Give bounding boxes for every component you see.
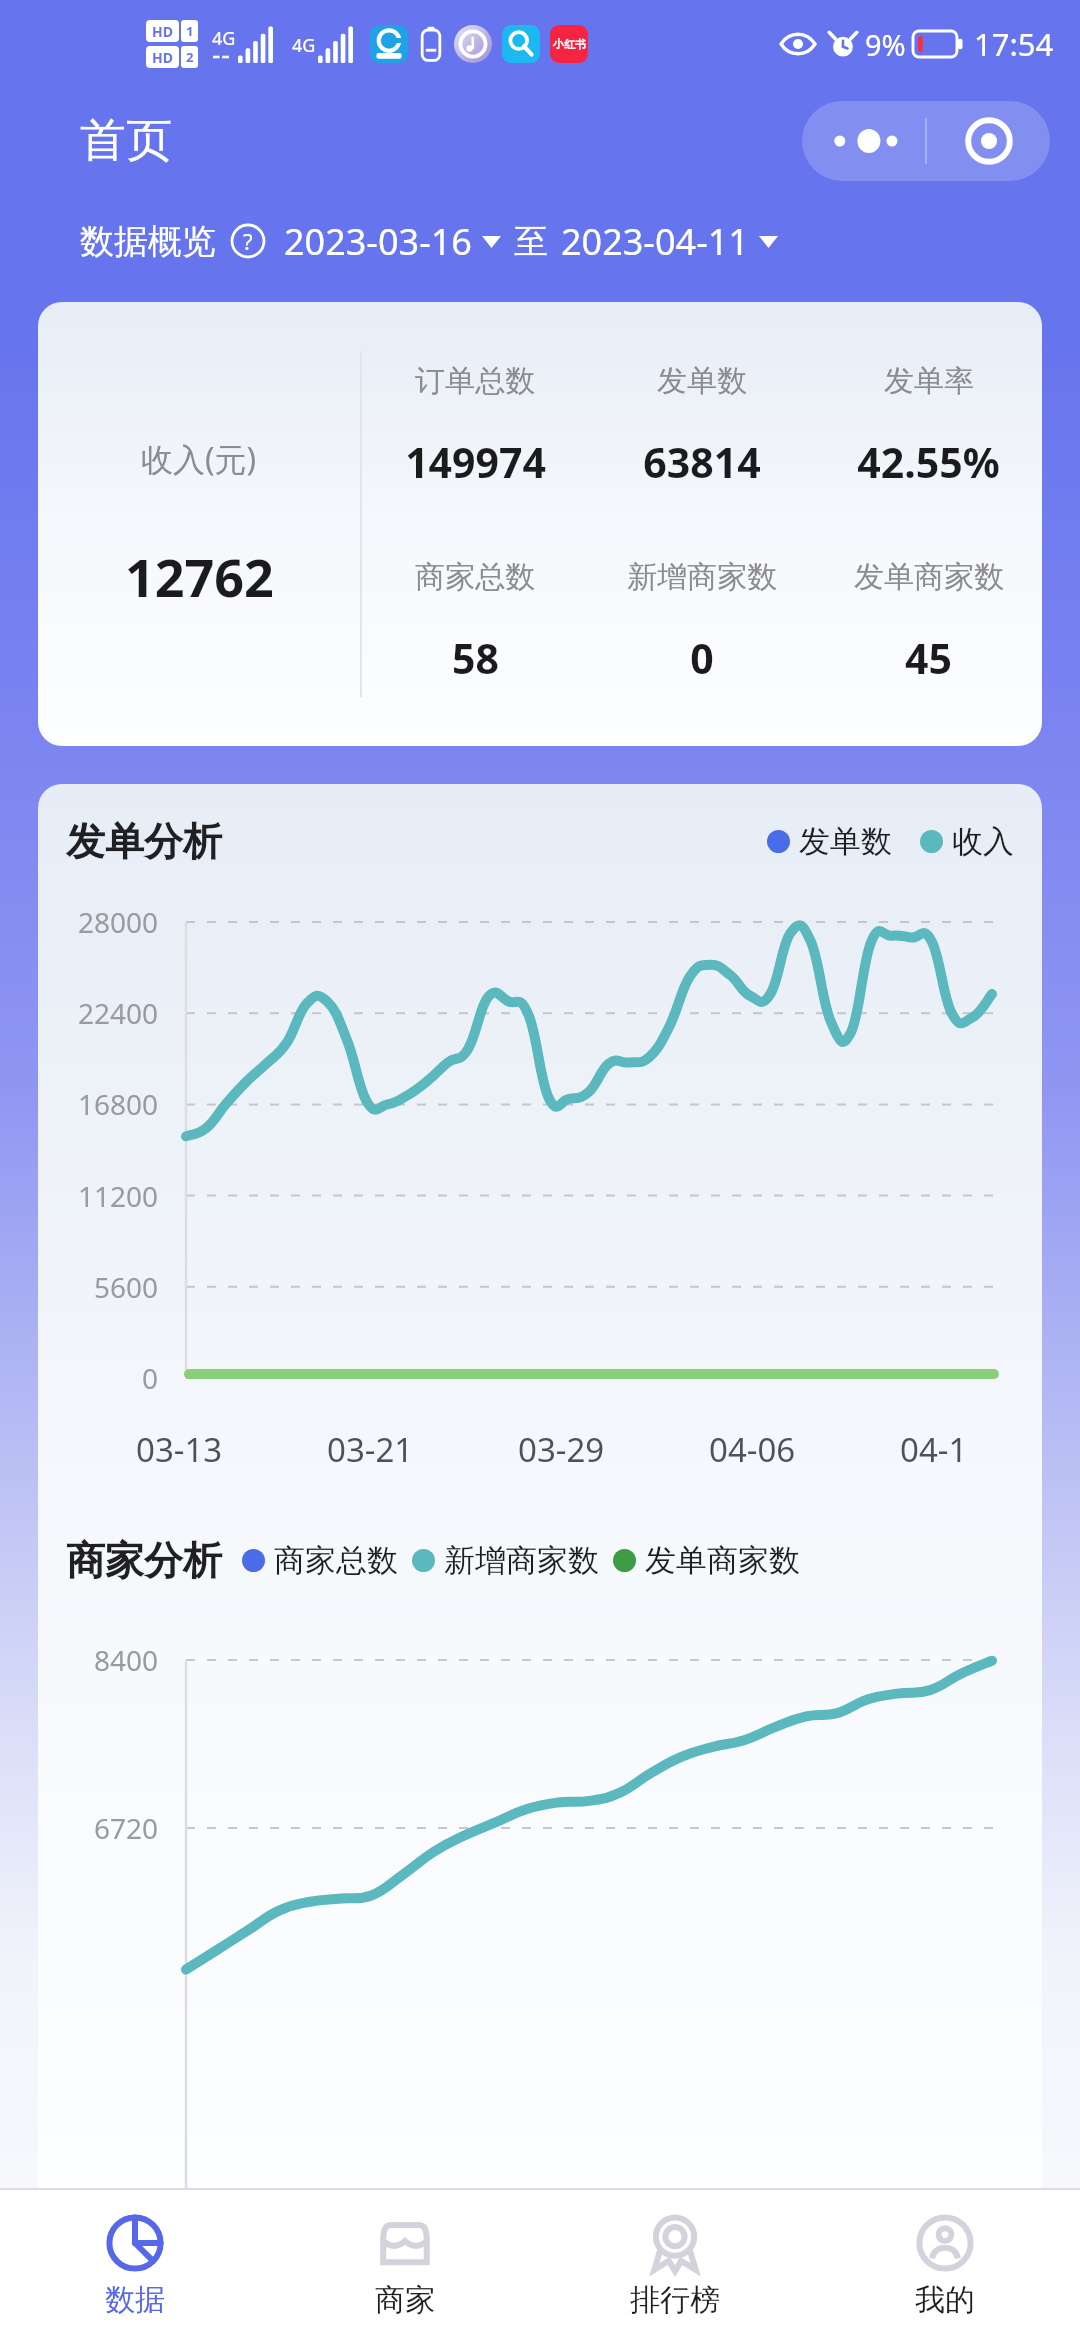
staticText: 16800	[38, 1085, 158, 1123]
button[interactable]: 收入	[920, 822, 1014, 861]
staticText: 42.55%	[857, 434, 1000, 490]
staticText: HD	[152, 48, 173, 67]
staticText: 58	[452, 630, 499, 686]
staticText: 0	[38, 1359, 158, 1397]
button[interactable]: 商家	[270, 2190, 540, 2340]
staticText: 03-13	[136, 1427, 327, 1472]
staticText: 商家总数	[415, 558, 535, 596]
staticText: 8400	[38, 1641, 158, 1679]
staticText: 发单商家数	[854, 558, 1004, 596]
staticText: 发单商家数	[645, 1541, 800, 1580]
staticText: 17:54	[974, 23, 1054, 65]
staticText: 9%	[865, 25, 906, 64]
staticText: 04-06	[709, 1427, 900, 1472]
staticText: 22400	[38, 994, 158, 1032]
staticText: 2	[186, 48, 194, 66]
button[interactable]: More	[802, 101, 925, 181]
staticText: 至	[514, 220, 548, 263]
button[interactable]: Close	[927, 101, 1050, 181]
button[interactable]: 排行榜	[540, 2190, 810, 2340]
staticText: 商家	[375, 2281, 435, 2319]
staticText: 收入	[952, 822, 1014, 861]
staticText: 发单数	[799, 822, 892, 861]
staticText: 新增商家数	[627, 558, 777, 596]
button[interactable]: 我的	[810, 2190, 1080, 2340]
button[interactable]: 收入(元)	[38, 302, 1042, 746]
staticText: 小红书	[553, 37, 586, 51]
staticText: 新增商家数	[444, 1541, 599, 1580]
staticText: 我的	[915, 2281, 975, 2319]
staticText: 63814	[643, 434, 761, 490]
staticText: 订单总数	[415, 362, 535, 400]
staticText: 2023-03-16	[284, 217, 472, 266]
staticText: ?	[243, 226, 253, 256]
staticText: 数据概览	[80, 220, 216, 263]
staticText: 4G	[292, 33, 316, 58]
button[interactable]: 2023-03-16	[284, 217, 501, 266]
button[interactable]: Help	[228, 221, 268, 261]
staticText: 0	[690, 630, 714, 686]
button[interactable]: 商家总数	[242, 1541, 398, 1580]
staticText: 首页	[80, 112, 172, 170]
staticText: 收入(元)	[141, 437, 257, 481]
staticText: 5600	[38, 1268, 158, 1306]
staticText: 6720	[38, 1809, 158, 1847]
button[interactable]: 发单数	[767, 822, 892, 861]
button[interactable]: 发单商家数	[613, 1541, 800, 1580]
staticText: 03-21	[327, 1427, 518, 1472]
staticText: 排行榜	[630, 2281, 720, 2319]
staticText: 2023-04-11	[561, 217, 749, 266]
button[interactable]: 2023-04-11	[561, 217, 778, 266]
staticText: 1	[186, 22, 194, 40]
staticText: 11200	[38, 1177, 158, 1215]
staticText: HD	[152, 22, 173, 41]
staticText: 商家总数	[274, 1541, 398, 1580]
staticText: 发单率	[884, 362, 974, 400]
staticText: 149974	[405, 434, 546, 490]
button[interactable]: 新增商家数	[412, 1541, 599, 1580]
staticText: 发单数	[657, 362, 747, 400]
staticText: 数据	[105, 2281, 165, 2319]
staticText: 商家分析	[66, 1536, 222, 1585]
button[interactable]: 数据	[0, 2190, 270, 2340]
staticText: 04-1	[900, 1427, 1038, 1472]
staticText: 4G	[212, 26, 236, 51]
staticText: 45	[905, 630, 952, 686]
staticText: 发单分析	[66, 817, 222, 866]
staticText: 12762	[125, 541, 274, 612]
staticText: 03-29	[518, 1427, 709, 1472]
staticText: 28000	[38, 903, 158, 941]
